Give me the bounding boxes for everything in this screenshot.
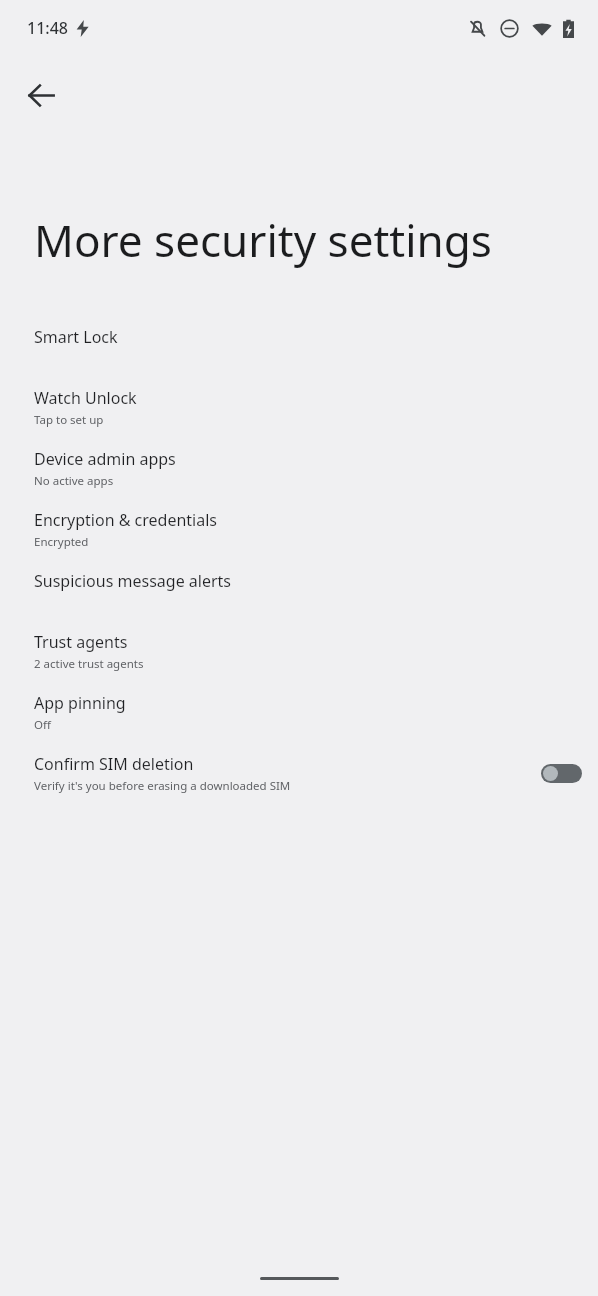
staticText: 2 active trust agents: [34, 656, 144, 672]
staticText: Tap to set up: [34, 412, 104, 428]
staticText: Verify it's you before erasing a downloa…: [34, 778, 291, 794]
staticText: No active apps: [34, 473, 114, 489]
staticText: Encryption & credentials: [34, 509, 217, 531]
button[interactable]: Confirm SIM deletion toggle: [541, 764, 582, 783]
staticText: Confirm SIM deletion: [34, 753, 194, 775]
staticText: Off: [34, 717, 51, 733]
staticText: Encrypted: [34, 534, 89, 550]
button[interactable]: App pinning: [0, 682, 598, 743]
staticText: Smart Lock: [34, 326, 118, 348]
button[interactable]: Device admin apps: [0, 438, 598, 499]
staticText: Trust agents: [34, 631, 128, 653]
button[interactable]: Confirm SIM deletion: [0, 743, 598, 804]
button[interactable]: Back: [14, 68, 68, 122]
button[interactable]: Smart Lock: [0, 316, 598, 377]
staticText: Suspicious message alerts: [34, 570, 231, 592]
staticText: Device admin apps: [34, 448, 176, 470]
button[interactable]: Trust agents: [0, 621, 598, 682]
staticText: Watch Unlock: [34, 387, 137, 409]
staticText: App pinning: [34, 692, 126, 714]
staticText: More security settings: [34, 210, 492, 270]
staticText: 11:48: [27, 17, 68, 39]
button[interactable]: Watch Unlock: [0, 377, 598, 438]
button[interactable]: Suspicious message alerts: [0, 560, 598, 621]
button[interactable]: Encryption & credentials: [0, 499, 598, 560]
